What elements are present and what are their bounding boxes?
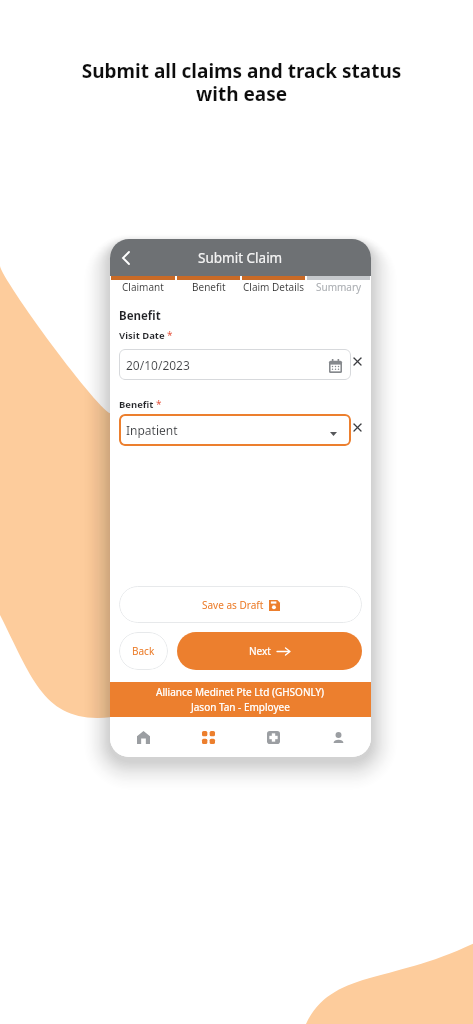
staticText: Back bbox=[132, 644, 155, 658]
button[interactable]: Dashboard bbox=[176, 717, 241, 757]
staticText: Alliance Medinet Pte Ltd (GHSONLY) bbox=[156, 685, 325, 699]
button[interactable]: Next bbox=[177, 632, 362, 670]
button[interactable]: New claim bbox=[241, 717, 306, 757]
button[interactable]: Benefit bbox=[176, 280, 241, 296]
button[interactable]: Back bbox=[119, 632, 168, 670]
staticText: Inpatient bbox=[126, 422, 178, 438]
staticText: Claim Details bbox=[243, 280, 305, 294]
staticText: Benefit bbox=[119, 398, 154, 411]
staticText: Jason Tan - Employee bbox=[191, 700, 290, 714]
staticText: Claimant bbox=[122, 280, 164, 294]
staticText: Submit all claims and track status with … bbox=[73, 58, 410, 107]
button[interactable]: Back bbox=[113, 245, 139, 271]
staticText: Summary bbox=[316, 280, 362, 294]
button[interactable]: Claim Details bbox=[241, 280, 306, 296]
button[interactable]: Clear benefit bbox=[351, 415, 362, 446]
staticText: Save as Draft bbox=[202, 598, 264, 612]
button[interactable]: Home bbox=[110, 717, 176, 757]
button[interactable]: 20/10/2023 bbox=[119, 349, 351, 380]
button[interactable]: Clear visit date bbox=[351, 349, 362, 380]
button[interactable]: Save as Draft bbox=[119, 586, 362, 623]
staticText: * bbox=[156, 397, 162, 411]
staticText: Benefit bbox=[119, 308, 161, 324]
staticText: Visit Date bbox=[119, 329, 165, 342]
staticText: Next bbox=[249, 644, 271, 658]
staticText: 20/10/2023 bbox=[126, 357, 190, 373]
button[interactable]: Summary bbox=[306, 280, 371, 296]
staticText: * bbox=[167, 328, 173, 342]
button[interactable]: Profile bbox=[306, 717, 371, 757]
staticText: Submit Claim bbox=[198, 249, 283, 267]
staticText: Benefit bbox=[192, 280, 226, 294]
button[interactable]: Inpatient bbox=[119, 414, 351, 446]
button[interactable]: Claimant bbox=[110, 280, 176, 296]
